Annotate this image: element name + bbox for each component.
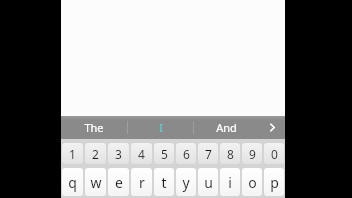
button[interactable]: 8 bbox=[220, 143, 240, 164]
staticText: t bbox=[161, 173, 167, 192]
button[interactable]: t bbox=[154, 168, 174, 196]
staticText: 2 bbox=[92, 146, 99, 162]
staticText: 1 bbox=[69, 146, 76, 162]
staticText: e bbox=[115, 173, 123, 192]
button[interactable]: Expand suggestions bbox=[259, 116, 285, 139]
staticText: 5 bbox=[161, 146, 168, 162]
staticText: w bbox=[90, 173, 102, 192]
button[interactable]: I bbox=[128, 116, 193, 139]
button[interactable]: p bbox=[264, 168, 284, 196]
staticText: 7 bbox=[205, 146, 212, 162]
button[interactable]: 5 bbox=[154, 143, 174, 164]
button[interactable]: u bbox=[198, 168, 218, 196]
button[interactable]: 0 bbox=[264, 143, 284, 164]
staticText: i bbox=[228, 173, 232, 192]
staticText: 4 bbox=[138, 146, 145, 162]
staticText: u bbox=[204, 173, 213, 192]
staticText: p bbox=[270, 173, 279, 192]
button[interactable]: q bbox=[62, 168, 83, 196]
staticText: 0 bbox=[271, 146, 278, 162]
staticText: y bbox=[182, 173, 190, 192]
button[interactable]: 9 bbox=[242, 143, 262, 164]
button[interactable]: And bbox=[194, 116, 259, 139]
button[interactable]: o bbox=[242, 168, 262, 196]
button[interactable]: 3 bbox=[108, 143, 129, 164]
staticText: 8 bbox=[227, 146, 234, 162]
button[interactable]: y bbox=[176, 168, 196, 196]
staticText: o bbox=[248, 173, 257, 192]
staticText: q bbox=[68, 173, 77, 192]
button[interactable]: The bbox=[61, 116, 127, 139]
button[interactable]: 1 bbox=[62, 143, 83, 164]
button[interactable]: 6 bbox=[176, 143, 196, 164]
button[interactable]: 2 bbox=[85, 143, 106, 164]
button[interactable]: w bbox=[85, 168, 106, 196]
staticText: 6 bbox=[183, 146, 190, 162]
button[interactable]: r bbox=[131, 168, 152, 196]
button[interactable]: e bbox=[108, 168, 129, 196]
staticText: 3 bbox=[115, 146, 122, 162]
staticText: I bbox=[159, 120, 163, 135]
button[interactable]: i bbox=[220, 168, 240, 196]
staticText: r bbox=[139, 173, 145, 192]
button[interactable]: 7 bbox=[198, 143, 218, 164]
staticText: And bbox=[216, 120, 237, 135]
button[interactable]: 4 bbox=[131, 143, 152, 164]
staticText: The bbox=[84, 120, 104, 135]
staticText: 9 bbox=[249, 146, 256, 162]
